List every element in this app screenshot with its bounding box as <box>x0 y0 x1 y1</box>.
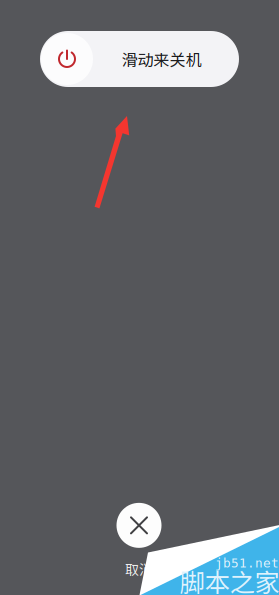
button[interactable]: 取消 <box>116 503 161 579</box>
button[interactable]: 滑动来关机 <box>40 31 239 87</box>
staticText: 脚本之家 <box>179 563 279 595</box>
staticText: 滑动来关机 <box>121 47 201 71</box>
staticText: jb51.net <box>215 556 279 570</box>
staticText: 取消 <box>125 559 153 579</box>
